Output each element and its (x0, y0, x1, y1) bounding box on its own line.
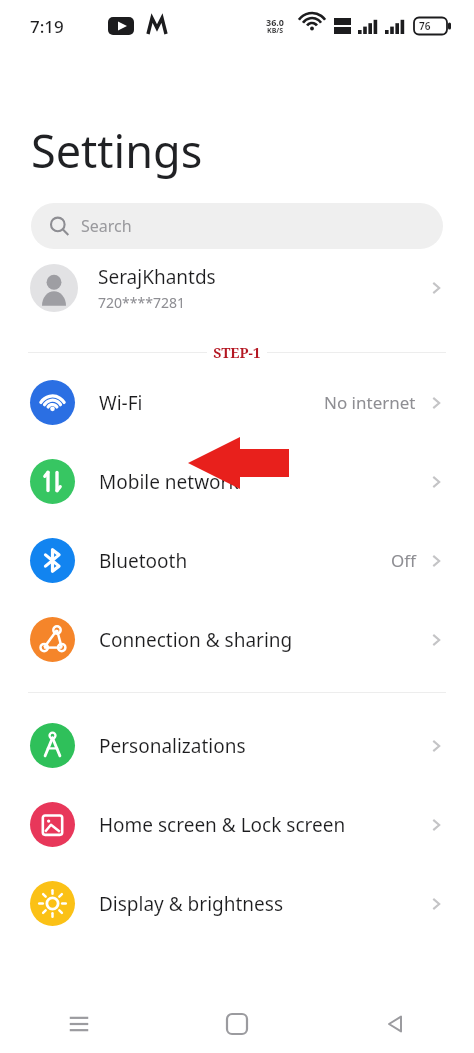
button[interactable]: Wi-Fi (0, 363, 474, 442)
button[interactable]: Search (31, 203, 443, 249)
button[interactable]: Connection & sharing (0, 600, 474, 679)
staticText: Bluetooth (99, 548, 391, 574)
button[interactable]: Home (158, 995, 316, 1053)
staticText: Search (81, 215, 132, 237)
staticText: Settings (31, 120, 203, 181)
staticText: No internet (324, 391, 416, 414)
staticText: 720****7281 (98, 293, 185, 312)
staticText: STEP-1 (213, 343, 261, 362)
button[interactable]: Bluetooth (0, 521, 474, 600)
staticText: Wi-Fi (99, 390, 324, 416)
staticText: Home screen & Lock screen (99, 812, 428, 838)
staticText: 76 (419, 19, 431, 33)
button[interactable]: Mobile network (0, 442, 474, 521)
staticText: Off (391, 549, 416, 572)
staticText: Display & brightness (99, 891, 428, 917)
button[interactable]: Back (316, 995, 474, 1053)
button[interactable]: Display & brightness (0, 864, 474, 943)
button[interactable]: SerajKhantds (0, 249, 474, 327)
staticText: SerajKhantds (98, 264, 216, 290)
button[interactable]: Personalizations (0, 706, 474, 785)
staticText: 36.0 (266, 16, 284, 28)
staticText: Connection & sharing (99, 627, 428, 653)
staticText: Mobile network (99, 469, 428, 495)
staticText: 7:19 (30, 15, 64, 38)
staticText: KB/S (267, 26, 284, 36)
button[interactable]: Recent apps (0, 995, 158, 1053)
button[interactable]: Home screen & Lock screen (0, 785, 474, 864)
staticText: Personalizations (99, 733, 428, 759)
